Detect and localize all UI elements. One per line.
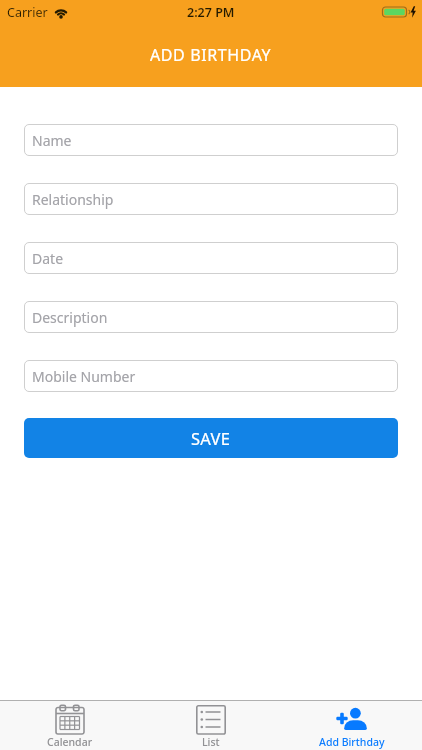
- staticText: ADD BIRTHDAY: [150, 44, 272, 66]
- staticText: Date: [32, 249, 64, 268]
- button[interactable]: List: [140, 701, 281, 750]
- button[interactable]: Relationship: [24, 183, 398, 215]
- staticText: Description: [32, 308, 108, 327]
- button[interactable]: Name: [24, 124, 398, 156]
- button[interactable]: SAVE: [24, 418, 398, 458]
- staticText: Carrier: [7, 4, 48, 21]
- button[interactable]: Add Birthday: [281, 701, 422, 750]
- staticText: Relationship: [32, 190, 114, 209]
- button[interactable]: Date: [24, 242, 398, 274]
- button[interactable]: Calendar: [0, 701, 140, 750]
- staticText: SAVE: [191, 427, 231, 449]
- staticText: Calendar: [47, 735, 93, 749]
- staticText: List: [202, 735, 220, 749]
- staticText: Name: [32, 131, 72, 150]
- staticText: Mobile Number: [32, 367, 136, 386]
- button[interactable]: Description: [24, 301, 398, 333]
- staticText: 2:27 PM: [187, 4, 235, 21]
- button[interactable]: Mobile Number: [24, 360, 398, 392]
- staticText: Add Birthday: [319, 735, 385, 749]
